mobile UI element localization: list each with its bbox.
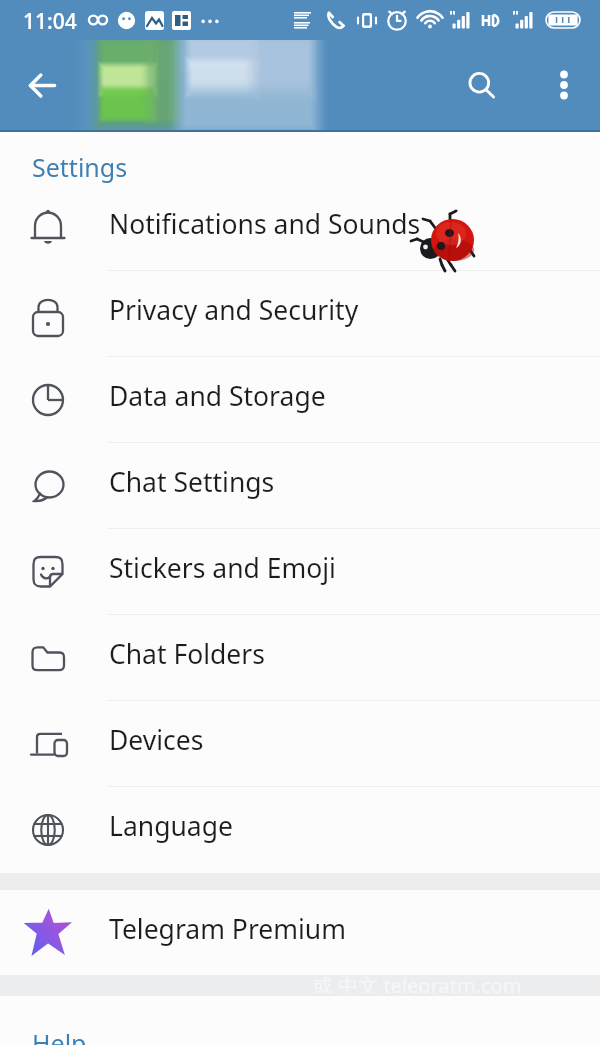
- staticText: Language: [109, 808, 233, 844]
- staticText: 或 中文 telegratm.com: [313, 972, 522, 993]
- button[interactable]: Search: [453, 57, 509, 113]
- staticText: Telegram Premium: [109, 911, 347, 947]
- button[interactable]: Privacy and Security: [0, 271, 600, 357]
- button[interactable]: Telegram Premium: [0, 890, 600, 975]
- button[interactable]: Data and Storage: [0, 357, 600, 443]
- staticText: Stickers and Emoji: [109, 550, 336, 586]
- staticText: Notifications and Sounds: [109, 206, 421, 242]
- staticText: 11:04: [23, 7, 77, 36]
- button[interactable]: More options: [536, 57, 592, 113]
- staticText: Data and Storage: [109, 378, 326, 414]
- staticText: Devices: [109, 722, 204, 758]
- button[interactable]: Stickers and Emoji: [0, 529, 600, 615]
- staticText: Chat Settings: [109, 464, 275, 500]
- button[interactable]: Language: [0, 787, 600, 873]
- staticText: Chat Folders: [109, 636, 265, 672]
- button[interactable]: Back: [14, 57, 70, 113]
- button[interactable]: Chat Folders: [0, 615, 600, 701]
- staticText: Privacy and Security: [109, 292, 359, 328]
- button[interactable]: Devices: [0, 701, 600, 787]
- staticText: Settings: [32, 150, 128, 184]
- button[interactable]: Notifications and Sounds: [0, 185, 600, 271]
- staticText: Help: [32, 1026, 87, 1045]
- button[interactable]: Chat Settings: [0, 443, 600, 529]
